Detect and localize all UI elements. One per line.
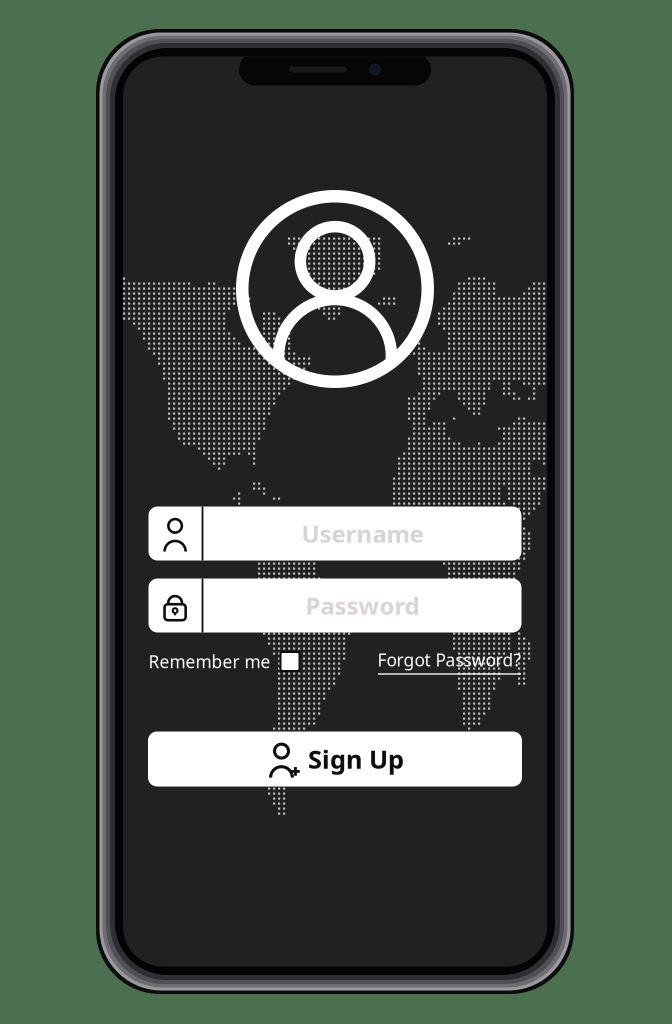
staticText: Forgot Password?: [377, 648, 521, 671]
button[interactable]: Forgot Password?: [361, 646, 521, 676]
button[interactable]: Sign Up: [148, 731, 522, 786]
staticText: Username: [301, 518, 423, 549]
staticText: Sign Up: [308, 742, 404, 776]
staticText: Password: [305, 590, 419, 621]
button[interactable]: Remember me: [148, 648, 308, 674]
button[interactable]: Username: [148, 506, 521, 560]
staticText: Remember me: [148, 650, 270, 673]
button[interactable]: Password: [148, 578, 521, 632]
